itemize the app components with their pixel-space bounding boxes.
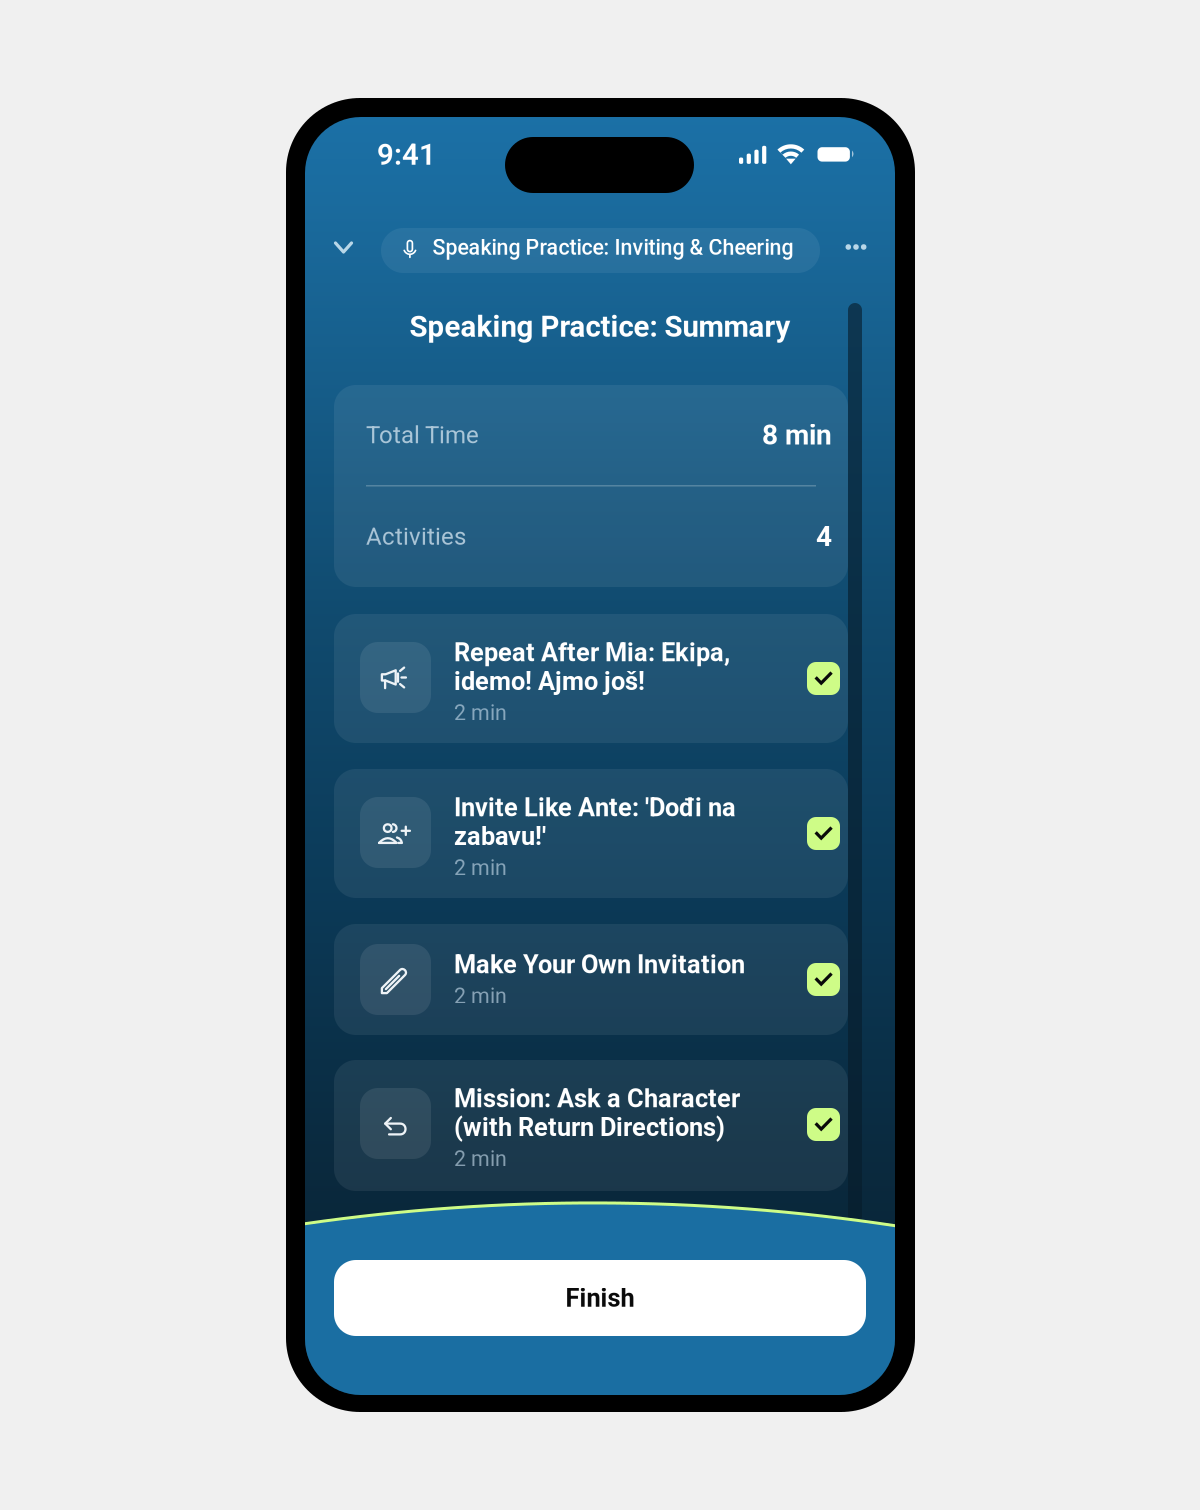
button[interactable]: Finish (334, 1260, 866, 1336)
staticText: 4 (816, 520, 832, 552)
staticText: Speaking Practice: Summary (409, 310, 790, 343)
button[interactable]: Speaking Practice: Inviting & Cheering (381, 228, 820, 273)
staticText: 9:41 (377, 138, 436, 171)
staticText: Finish (565, 1283, 634, 1312)
staticText: Total Time (366, 421, 479, 449)
staticText: 2 min (454, 1147, 507, 1171)
button[interactable]: Mission: Ask a Character (with Return Di… (334, 1060, 848, 1191)
staticText: Mission: Ask a Character (with Return Di… (454, 1084, 740, 1142)
button[interactable]: Collapse (321, 222, 365, 272)
staticText: 2 min (454, 856, 507, 880)
staticText: Invite Like Ante: 'Dođi na zabavu!' (454, 793, 736, 851)
staticText: 8 min (762, 419, 832, 451)
staticText: Activities (366, 523, 466, 550)
button[interactable]: Repeat After Mia: Ekipa, idemo! Ajmo još… (334, 614, 848, 743)
staticText: 2 min (454, 701, 507, 725)
staticText: Speaking Practice: Inviting & Cheering (432, 235, 793, 260)
button[interactable]: Invite Like Ante: 'Dođi na zabavu!' (334, 769, 848, 898)
staticText: Make Your Own Invitation (454, 950, 745, 979)
staticText: 2 min (454, 984, 507, 1008)
staticText: Repeat After Mia: Ekipa, idemo! Ajmo još… (454, 638, 730, 696)
button[interactable]: More options (831, 222, 881, 272)
button[interactable]: Make Your Own Invitation (334, 924, 848, 1035)
